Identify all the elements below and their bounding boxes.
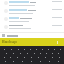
button[interactable] (0, 24, 64, 32)
button[interactable]: Key (45, 47, 51, 51)
button[interactable] (0, 8, 64, 16)
button[interactable]: Key (21, 47, 27, 51)
button[interactable]: Key (21, 55, 28, 59)
button[interactable]: Key (36, 59, 45, 63)
button[interactable]: Key (18, 59, 27, 63)
button[interactable]: Key (49, 51, 55, 55)
button[interactable]: Key (17, 51, 24, 55)
button[interactable]: Key (33, 47, 39, 51)
button[interactable]: Backup (0, 38, 64, 46)
staticText: Backup (2, 39, 17, 45)
button[interactable]: Key (9, 59, 18, 63)
button[interactable]: Key (1, 47, 8, 51)
button[interactable]: Key (8, 47, 15, 51)
button[interactable]: Key (54, 59, 63, 63)
button[interactable]: Key (28, 55, 35, 59)
button[interactable]: Key (1, 59, 9, 63)
button[interactable]: Key (56, 55, 63, 59)
button[interactable]: Key (10, 51, 17, 55)
button[interactable]: Key (14, 55, 21, 59)
button[interactable] (0, 0, 64, 8)
button[interactable]: Key (15, 47, 21, 51)
button[interactable]: Key (27, 47, 33, 51)
button[interactable] (0, 33, 64, 38)
button[interactable]: Key (51, 47, 57, 51)
button[interactable]: Key (57, 47, 63, 51)
button[interactable]: Key (35, 55, 42, 59)
button[interactable]: Key (27, 59, 36, 63)
button[interactable]: Key (31, 51, 37, 55)
button[interactable]: Key (45, 59, 54, 63)
button[interactable]: Key (1, 55, 7, 59)
button[interactable]: Key (43, 51, 49, 55)
button[interactable]: Key (49, 55, 56, 59)
button[interactable]: Key (39, 47, 45, 51)
button[interactable]: Key (3, 51, 10, 55)
button[interactable]: Key (24, 51, 31, 55)
button[interactable]: Key (37, 51, 43, 55)
button[interactable] (0, 16, 64, 24)
button[interactable]: Key (7, 55, 14, 59)
button[interactable]: Key (42, 55, 49, 59)
button[interactable]: Key (55, 51, 61, 55)
